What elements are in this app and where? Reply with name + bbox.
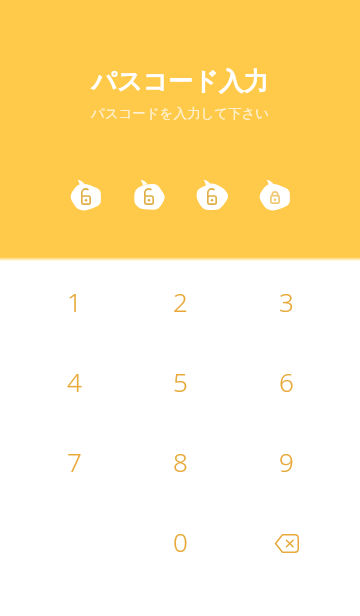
button[interactable]: 5 bbox=[127, 341, 233, 421]
staticText: 2 bbox=[173, 284, 188, 319]
staticText: 6 bbox=[279, 364, 294, 399]
staticText: 8 bbox=[173, 444, 188, 479]
button[interactable]: 1 bbox=[21, 261, 127, 341]
button[interactable]: 0 bbox=[127, 501, 233, 581]
staticText: 9 bbox=[279, 444, 294, 479]
staticText: パスコード入力 bbox=[0, 66, 360, 97]
button[interactable]: 2 bbox=[127, 261, 233, 341]
button[interactable]: 7 bbox=[21, 421, 127, 501]
button[interactable]: 4 bbox=[21, 341, 127, 421]
staticText: 1 bbox=[67, 284, 82, 319]
staticText: 4 bbox=[67, 364, 82, 399]
staticText: 7 bbox=[67, 444, 82, 479]
staticText: 3 bbox=[279, 284, 294, 319]
other: Backspace bbox=[274, 534, 299, 553]
button[interactable]: 3 bbox=[233, 261, 339, 341]
button[interactable]: Backspace bbox=[233, 501, 339, 581]
button[interactable]: 8 bbox=[127, 421, 233, 501]
staticText: 0 bbox=[173, 524, 188, 559]
button[interactable]: 9 bbox=[233, 421, 339, 501]
staticText: パスコードを入力して下さい bbox=[0, 105, 360, 122]
button[interactable]: 6 bbox=[233, 341, 339, 421]
staticText: 5 bbox=[173, 364, 188, 399]
